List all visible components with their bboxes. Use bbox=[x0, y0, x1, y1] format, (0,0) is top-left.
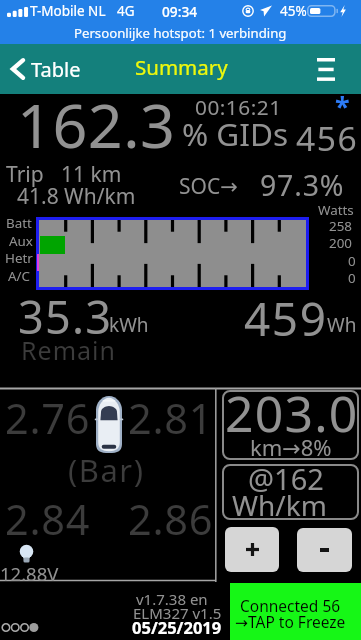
staticText: % GIDs bbox=[182, 112, 289, 155]
button[interactable]: Menu bbox=[306, 44, 345, 94]
button[interactable]: Increase bbox=[225, 527, 279, 572]
staticText: 203.0 bbox=[225, 379, 359, 447]
staticText: (Bar) bbox=[68, 449, 145, 491]
staticText: 11 km bbox=[61, 160, 122, 189]
staticText: kWh bbox=[109, 312, 149, 338]
staticText: 4G bbox=[117, 2, 135, 20]
staticText: v1.7.38 en bbox=[136, 589, 208, 609]
staticText: Connected 56 bbox=[240, 595, 341, 616]
staticText: 2.86 bbox=[128, 491, 214, 548]
staticText: SOC→ bbox=[179, 172, 238, 201]
staticText: 459 bbox=[244, 287, 328, 350]
staticText: 45% bbox=[280, 2, 307, 20]
staticText: 41.8 Wh/km bbox=[17, 182, 136, 211]
staticText: 05/25/2019 bbox=[132, 616, 222, 638]
staticText: 456 bbox=[296, 115, 359, 161]
staticText: Remain bbox=[21, 333, 116, 367]
staticText: Persoonlijke hotspot: 1 verbinding bbox=[74, 24, 287, 42]
staticText: 162.3 bbox=[17, 83, 176, 166]
button[interactable]: Decrease bbox=[297, 528, 352, 572]
staticText: Watts bbox=[318, 201, 354, 219]
staticText: 00:16:21 bbox=[195, 93, 282, 121]
staticText: 200 bbox=[329, 234, 352, 252]
staticText: 2.84 bbox=[5, 491, 91, 548]
staticText: Hetr bbox=[5, 249, 33, 267]
staticText: km→8% bbox=[250, 432, 332, 462]
staticText: * bbox=[335, 88, 350, 125]
button[interactable]: Table bbox=[4, 44, 91, 94]
staticText: 258 bbox=[329, 217, 352, 235]
staticText: Wh bbox=[327, 312, 357, 338]
staticText: Wh/km bbox=[232, 486, 327, 524]
staticText: 0 bbox=[348, 252, 356, 270]
staticText: 2.76 bbox=[5, 390, 91, 447]
button[interactable] bbox=[222, 390, 359, 460]
staticText: A/C bbox=[8, 267, 31, 285]
staticText: T-Mobile NL bbox=[30, 2, 106, 20]
staticText: Summary bbox=[135, 53, 228, 81]
staticText: Batt bbox=[6, 214, 32, 232]
staticText: 0 bbox=[348, 269, 356, 287]
staticText: 97.3% bbox=[260, 166, 345, 205]
staticText: →TAP to Freeze bbox=[235, 611, 346, 632]
button[interactable] bbox=[222, 464, 359, 520]
staticText: ELM327 v1.5 bbox=[133, 603, 222, 623]
staticText: 35.3 bbox=[18, 286, 113, 347]
staticText: @162 bbox=[248, 459, 324, 498]
staticText: Table bbox=[31, 56, 81, 83]
staticText: Trip bbox=[6, 160, 44, 189]
staticText: 12.88V bbox=[0, 561, 59, 586]
staticText: 09:34 bbox=[162, 2, 198, 21]
button[interactable] bbox=[230, 583, 361, 640]
staticText: Aux bbox=[9, 232, 33, 250]
staticText: 2.81 bbox=[128, 390, 214, 447]
